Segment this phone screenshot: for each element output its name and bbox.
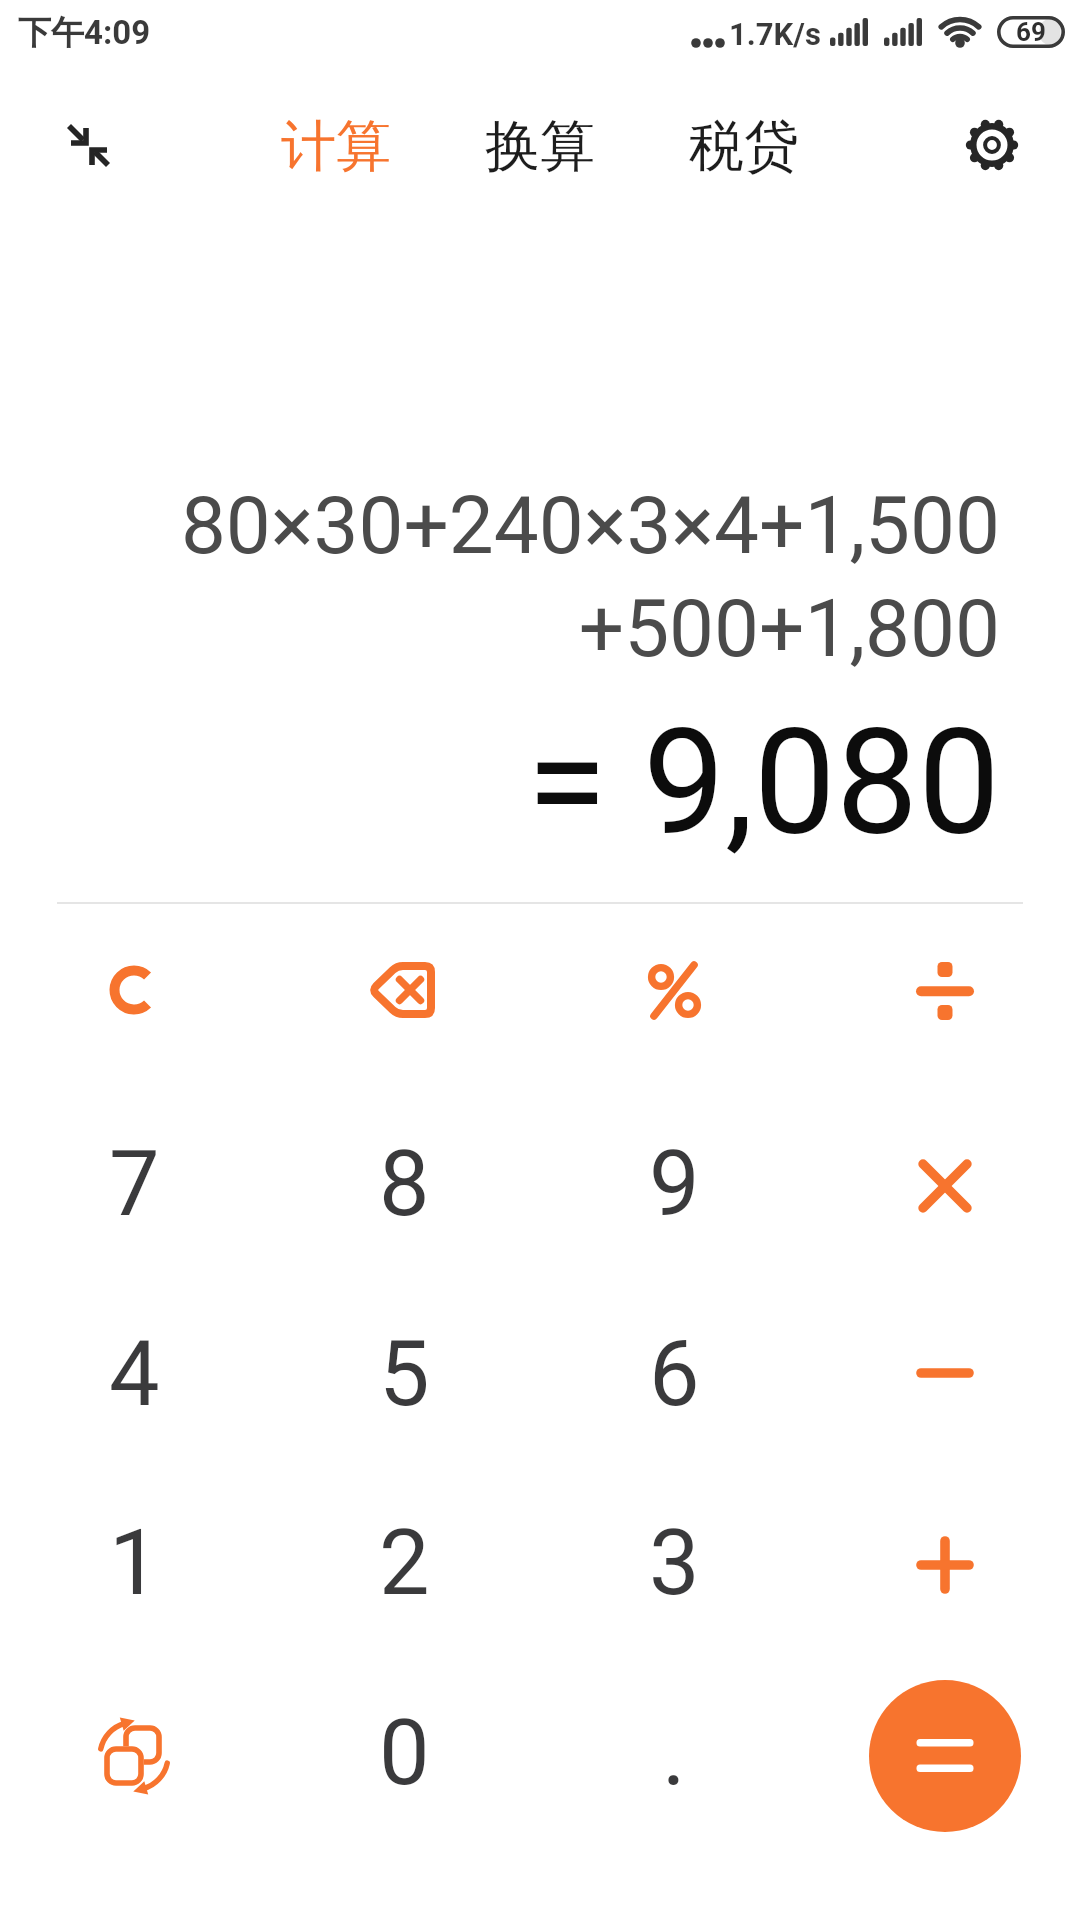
button[interactable] (869, 1680, 1021, 1832)
staticText: 9 (649, 1132, 700, 1237)
staticText: 换算 (485, 112, 595, 181)
button[interactable] (815, 1473, 1075, 1657)
button[interactable]: 计算 (256, 108, 416, 184)
staticText: 税贷 (689, 112, 799, 181)
button[interactable]: 7 (4, 1092, 264, 1276)
staticText: 5 (379, 1322, 430, 1427)
button[interactable]: 8 (274, 1092, 534, 1276)
staticText: 6 (649, 1322, 700, 1427)
staticText: 2 (379, 1511, 430, 1616)
button[interactable]: 换算 (460, 108, 620, 184)
staticText: 69 (1016, 17, 1046, 47)
staticText: 下午4:09 (18, 12, 151, 54)
button[interactable] (4, 1664, 264, 1848)
staticText: 8 (379, 1132, 430, 1237)
button[interactable]: 4 (4, 1282, 264, 1466)
staticText: 4 (109, 1322, 160, 1427)
staticText: 80×30+240×3×4+1,500 (0, 479, 1000, 573)
button[interactable] (4, 898, 264, 1082)
staticText: +500+1,800 (0, 582, 1000, 676)
button[interactable] (815, 1094, 1075, 1278)
staticText: = 9,080 (0, 698, 1000, 869)
staticText: 7 (109, 1132, 160, 1237)
button[interactable]: 1 (4, 1471, 264, 1655)
button[interactable]: 6 (544, 1282, 804, 1466)
staticText: 1.7K/s (729, 16, 821, 52)
button[interactable] (56, 114, 120, 178)
button[interactable]: 0 (274, 1661, 534, 1845)
staticText: 3 (649, 1511, 700, 1616)
staticText: 1 (109, 1511, 160, 1616)
button[interactable]: 5 (274, 1282, 534, 1466)
button[interactable] (952, 105, 1032, 185)
button[interactable] (815, 1281, 1075, 1465)
button[interactable]: 9 (544, 1092, 804, 1276)
staticText: . (662, 1701, 686, 1806)
button[interactable]: . (544, 1661, 804, 1845)
staticText: 0 (379, 1701, 430, 1806)
button[interactable] (274, 898, 534, 1082)
button[interactable]: 2 (274, 1471, 534, 1655)
button[interactable] (815, 899, 1075, 1083)
button[interactable]: 3 (544, 1471, 804, 1655)
button[interactable]: 税贷 (664, 108, 824, 184)
staticText: 计算 (281, 112, 391, 181)
button[interactable] (544, 898, 804, 1082)
